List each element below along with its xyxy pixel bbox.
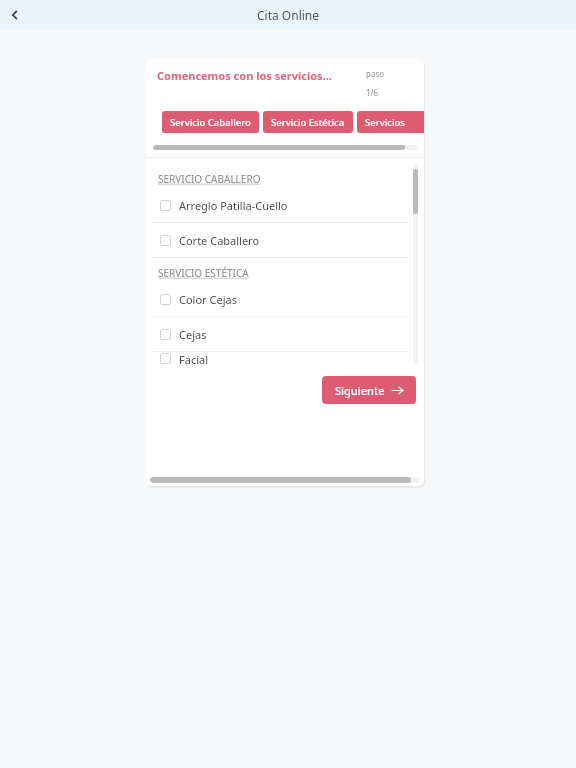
button[interactable]: Back (0, 0, 30, 29)
staticText: Color Cejas (179, 292, 237, 307)
button[interactable]: Corte Caballero (152, 223, 408, 257)
staticText: Cita Online (257, 7, 320, 23)
staticText: paso (366, 68, 385, 79)
button[interactable]: Servicios Señora (357, 111, 424, 133)
staticText: Facial (179, 352, 209, 364)
staticText: Servicios Señora (365, 116, 424, 129)
button[interactable]: Servicio Estética (263, 111, 353, 133)
button[interactable]: Facial (152, 352, 408, 364)
staticText: 1/6 (366, 87, 379, 98)
staticText: Comencemos con los servicios... (157, 68, 332, 83)
button[interactable]: Color Cejas (152, 282, 408, 316)
button[interactable]: Servicio Caballero (162, 111, 259, 133)
staticText: SERVICIO CABALLERO (158, 172, 261, 186)
staticText: Corte Caballero (179, 233, 260, 248)
staticText: Cejas (179, 327, 207, 342)
staticText: Servicio Estética (271, 116, 345, 129)
staticText: Servicio Caballero (170, 116, 251, 129)
button[interactable]: Cejas (152, 317, 408, 351)
button[interactable]: Arreglo Patilla-Cuello (152, 188, 408, 222)
button[interactable]: Siguiente (322, 376, 416, 404)
staticText: Siguiente (335, 383, 385, 398)
staticText: Arreglo Patilla-Cuello (179, 198, 288, 213)
staticText: SERVICIO ESTÉTICA (158, 266, 249, 280)
